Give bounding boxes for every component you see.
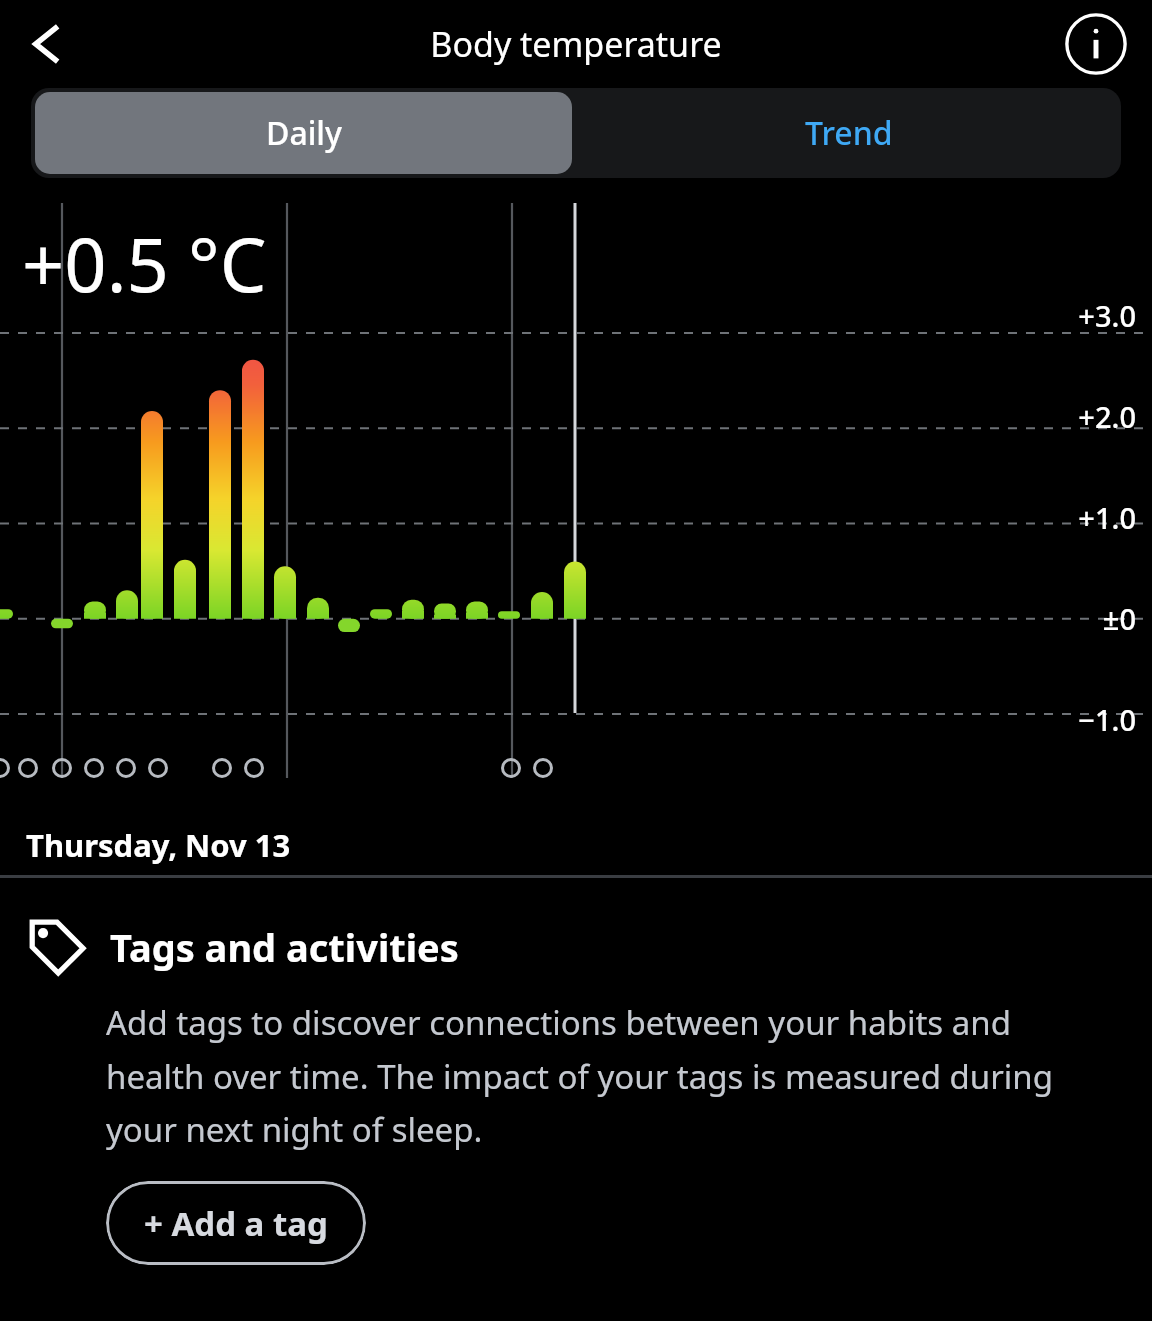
- staticText: Daily: [266, 111, 342, 155]
- staticText: ±0: [1102, 599, 1136, 638]
- staticText: Trend: [805, 111, 893, 155]
- button[interactable]: Trend: [576, 88, 1121, 178]
- staticText: Add tags to discover connections between…: [106, 1000, 1112, 1151]
- staticText: +1.0: [1078, 498, 1136, 537]
- button[interactable]: Back: [12, 8, 84, 80]
- staticText: + Add a tag: [144, 1201, 328, 1246]
- button[interactable]: + Add a tag: [106, 1181, 366, 1265]
- staticText: +2.0: [1078, 397, 1136, 436]
- staticText: Tags and activities: [110, 921, 459, 973]
- staticText: −1.0: [1078, 700, 1136, 739]
- button[interactable]: Information: [1060, 8, 1132, 80]
- button[interactable]: Daily: [35, 92, 572, 174]
- staticText: +3.0: [1078, 296, 1136, 335]
- staticText: Thursday, Nov 13: [26, 824, 291, 866]
- staticText: Body temperature: [430, 21, 722, 67]
- staticText: +0.5 °C: [22, 213, 267, 314]
